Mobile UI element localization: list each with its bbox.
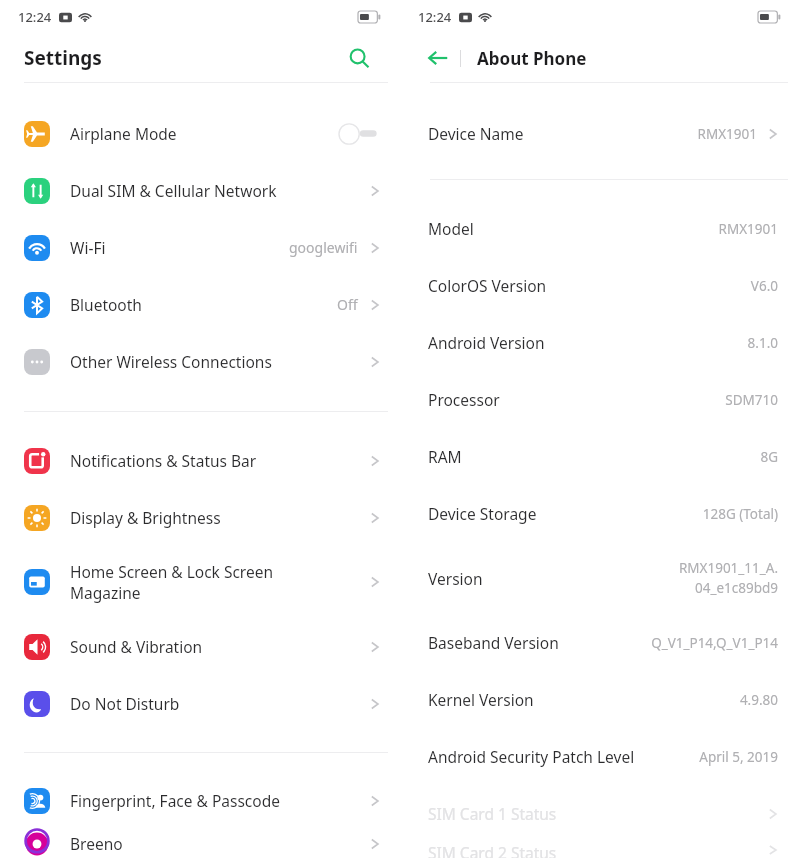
staticText: 4.9.80 — [739, 691, 778, 709]
staticText: 8.1.0 — [747, 334, 778, 352]
button[interactable]: Android Security Patch Level — [400, 728, 800, 785]
button[interactable]: SIM Card 2 Status — [400, 842, 800, 858]
staticText: Notifications & Status Bar — [70, 450, 370, 471]
staticText: 8G — [760, 448, 778, 466]
staticText: RMX1901_11_A. 04_e1c89bd9 — [678, 559, 778, 597]
staticText: Airplane Mode — [70, 123, 338, 144]
staticText: Breeno — [70, 833, 370, 854]
button[interactable]: Do Not Disturb — [0, 675, 400, 732]
staticText: Fingerprint, Face & Passcode — [70, 790, 370, 811]
staticText: About Phone — [477, 47, 587, 70]
staticText: Bluetooth — [70, 294, 337, 315]
staticText: Off — [337, 295, 358, 314]
button[interactable]: RAM — [400, 428, 800, 485]
button[interactable]: Version — [400, 542, 800, 614]
staticText: ColorOS Version — [428, 275, 547, 296]
button[interactable]: Dual SIM & Cellular Network — [0, 162, 400, 219]
staticText: RAM — [428, 446, 462, 467]
button[interactable]: Sound & Vibration — [0, 618, 400, 675]
button[interactable]: Search — [344, 43, 374, 73]
staticText: Android Version — [428, 332, 545, 353]
button[interactable]: Bluetooth — [0, 276, 400, 333]
staticText: Processor — [428, 389, 500, 410]
button[interactable]: Back — [422, 42, 454, 74]
button[interactable]: Settings — [0, 34, 400, 82]
staticText: SDM710 — [725, 391, 778, 409]
staticText: Model — [428, 218, 474, 239]
button[interactable]: Wi-Fi — [0, 219, 400, 276]
button[interactable]: Processor — [400, 371, 800, 428]
staticText: Android Security Patch Level — [428, 746, 635, 767]
button[interactable]: Home Screen & Lock Screen Magazine — [0, 546, 400, 618]
staticText: 128G (Total) — [702, 505, 778, 523]
staticText: SIM Card 2 Status — [428, 842, 557, 858]
staticText: Device Name — [428, 123, 524, 144]
staticText: Settings — [24, 45, 102, 71]
staticText: SIM Card 1 Status — [428, 803, 557, 824]
staticText: RMX1901 — [697, 125, 757, 143]
staticText: V6.0 — [750, 277, 778, 295]
button[interactable]: ColorOS Version — [400, 257, 800, 314]
staticText: Wi-Fi — [70, 237, 289, 258]
staticText: Other Wireless Connections — [70, 351, 370, 372]
staticText: Baseband Version — [428, 632, 559, 653]
button[interactable]: Fingerprint, Face & Passcode — [0, 772, 400, 829]
staticText: Do Not Disturb — [70, 693, 370, 714]
staticText: Home Screen & Lock Screen Magazine — [70, 561, 370, 604]
button[interactable]: Notifications & Status Bar — [0, 432, 400, 489]
staticText: Display & Brightness — [70, 507, 370, 528]
button[interactable]: SIM Card 1 Status — [400, 785, 800, 842]
staticText: Kernel Version — [428, 689, 534, 710]
staticText: Dual SIM & Cellular Network — [70, 180, 370, 201]
button[interactable]: Model — [400, 200, 800, 257]
staticText: April 5, 2019 — [699, 748, 778, 766]
button[interactable]: Airplane Mode — [0, 105, 400, 162]
staticText: Sound & Vibration — [70, 636, 370, 657]
button[interactable]: Android Version — [400, 314, 800, 371]
staticText: 12:24 — [418, 8, 452, 26]
button[interactable]: Device Storage — [400, 485, 800, 542]
staticText: RMX1901 — [718, 220, 778, 238]
staticText: Version — [428, 568, 483, 589]
staticText: Q_V1_P14,Q_V1_P14 — [651, 634, 778, 652]
button[interactable]: Other Wireless Connections — [0, 333, 400, 390]
staticText: googlewifi — [289, 238, 358, 257]
button[interactable]: Display & Brightness — [0, 489, 400, 546]
button[interactable]: Baseband Version — [400, 614, 800, 671]
button[interactable]: Breeno — [0, 829, 400, 858]
button[interactable]: Kernel Version — [400, 671, 800, 728]
staticText: 12:24 — [18, 8, 52, 26]
staticText: Device Storage — [428, 503, 537, 524]
button[interactable]: Device Name — [400, 105, 800, 162]
